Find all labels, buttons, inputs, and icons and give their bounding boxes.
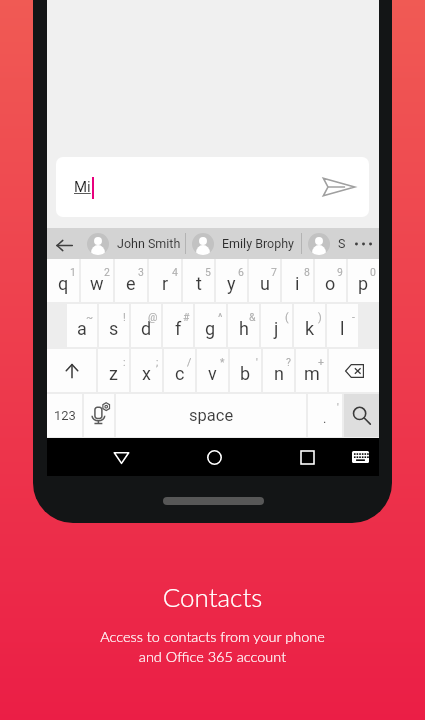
button[interactable]: Voice input	[84, 394, 114, 437]
staticText: w	[90, 273, 104, 294]
staticText: 5	[205, 266, 211, 278]
staticText: ;	[156, 356, 159, 368]
button[interactable]: t	[183, 259, 214, 302]
staticText: @	[148, 311, 158, 323]
staticText: r	[162, 273, 169, 294]
staticText: 123	[54, 408, 76, 423]
button[interactable]: v	[197, 349, 228, 392]
button[interactable]: More suggestions	[348, 228, 379, 259]
staticText: Mi	[74, 178, 91, 196]
button[interactable]: d	[131, 304, 161, 347]
button[interactable]: m	[296, 349, 327, 392]
button[interactable]: s	[99, 304, 129, 347]
staticText: 0	[370, 266, 376, 278]
button[interactable]: Emily Brophy	[186, 228, 301, 259]
button[interactable]: Mi	[56, 157, 369, 217]
button[interactable]: x	[131, 349, 162, 392]
staticText: 7	[271, 266, 277, 278]
button[interactable]: Backspace	[329, 349, 379, 392]
staticText: a	[77, 318, 87, 339]
button[interactable]: b	[230, 349, 261, 392]
button[interactable]: w	[81, 259, 113, 302]
staticText: y	[227, 273, 236, 294]
staticText: !	[123, 311, 126, 323]
staticText: 8	[304, 266, 310, 278]
button[interactable]: space	[116, 394, 306, 437]
staticText: )	[318, 311, 322, 323]
button[interactable]: Send	[322, 177, 355, 197]
button[interactable]: c	[164, 349, 195, 392]
staticText: Contacts	[0, 581, 425, 612]
staticText: l	[340, 318, 345, 339]
staticText: k	[305, 318, 315, 339]
button[interactable]: Home	[195, 438, 233, 476]
button[interactable]: f	[163, 304, 193, 347]
staticText: h	[239, 318, 249, 339]
staticText: #	[183, 311, 190, 323]
button[interactable]: q	[47, 259, 79, 302]
staticText: :	[123, 356, 126, 368]
button[interactable]: a	[67, 304, 97, 347]
button[interactable]: g	[195, 304, 226, 347]
staticText: f	[175, 318, 182, 339]
button[interactable]: r	[149, 259, 181, 302]
staticText: m	[304, 363, 320, 384]
button[interactable]: l	[327, 304, 358, 347]
staticText: 1	[70, 266, 76, 278]
staticText: Emily Brophy	[222, 236, 295, 251]
staticText: s	[109, 318, 119, 339]
button[interactable]: n	[263, 349, 294, 392]
staticText: 2	[104, 266, 110, 278]
button[interactable]: p	[348, 259, 379, 302]
button[interactable]: Back	[47, 228, 81, 259]
staticText: c	[175, 363, 185, 384]
staticText: 4	[172, 266, 178, 278]
button[interactable]: z	[98, 349, 129, 392]
staticText: *	[220, 356, 225, 368]
staticText: q	[58, 273, 69, 294]
button[interactable]: y	[216, 259, 247, 302]
staticText: d	[141, 318, 152, 339]
staticText: z	[109, 363, 118, 384]
staticText: .	[323, 411, 327, 426]
staticText: &	[249, 311, 256, 323]
button[interactable]: k	[294, 304, 325, 347]
staticText: x	[142, 363, 151, 384]
button[interactable]: Shift	[47, 349, 96, 392]
staticText: (	[285, 311, 289, 323]
staticText: v	[208, 363, 217, 384]
button[interactable]: Search	[344, 394, 379, 437]
staticText: u	[260, 273, 270, 294]
button[interactable]: .	[308, 394, 342, 437]
staticText: space	[189, 406, 234, 425]
button[interactable]: John Smith	[81, 228, 185, 259]
staticText: John Smith	[117, 236, 181, 251]
button[interactable]: Recent apps	[288, 438, 326, 476]
button[interactable]: Switch keyboard	[341, 438, 379, 476]
staticText: o	[325, 273, 336, 294]
button[interactable]: i	[282, 259, 313, 302]
staticText: '	[256, 356, 258, 368]
staticText: j	[274, 318, 279, 339]
staticText: b	[240, 363, 251, 384]
staticText: ?	[286, 356, 291, 368]
staticText: 9	[337, 266, 343, 278]
button[interactable]: e	[115, 259, 147, 302]
staticText: /	[187, 356, 192, 368]
button[interactable]: S	[302, 228, 348, 259]
button[interactable]: h	[228, 304, 259, 347]
staticText: i	[295, 273, 300, 294]
button[interactable]: j	[261, 304, 292, 347]
staticText: ~	[86, 311, 94, 323]
staticText: S	[338, 236, 346, 251]
button[interactable]: Back	[102, 438, 140, 476]
staticText: +	[318, 356, 324, 368]
button[interactable]: o	[315, 259, 346, 302]
staticText: -	[352, 311, 355, 323]
staticText: e	[126, 273, 136, 294]
staticText: '	[337, 401, 339, 413]
staticText: Access to contacts from your phone and O…	[0, 628, 425, 665]
button[interactable]: u	[249, 259, 280, 302]
staticText: g	[205, 318, 216, 339]
button[interactable]: 123	[47, 394, 82, 437]
